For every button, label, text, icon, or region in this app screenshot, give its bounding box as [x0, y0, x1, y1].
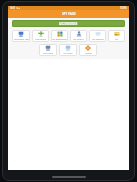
- button[interactable]: My Subscription: [108, 30, 125, 42]
- staticText: 100%: [120, 6, 127, 10]
- staticText: ACCESSORIES: [59, 22, 78, 26]
- staticText: My Profile: [43, 52, 53, 55]
- button[interactable]: Logout: [79, 44, 97, 56]
- staticText: 9:41 ▾ ▴: [10, 6, 20, 10]
- button[interactable]: ACCESSORIES: [12, 20, 125, 27]
- staticText: Add Device: [35, 38, 46, 41]
- button[interactable]: Document Mgr: [12, 30, 30, 42]
- button[interactable]: My Downloads: [51, 30, 68, 42]
- staticText: My Alerts: [63, 52, 73, 55]
- button[interactable]: Add Device: [32, 30, 49, 42]
- button[interactable]: My Profile: [39, 44, 57, 56]
- staticText: Document Mgr: [14, 38, 29, 41]
- staticText: Logout: [85, 52, 92, 55]
- staticText: My Orders: [73, 38, 84, 41]
- staticText: My Subscription: [109, 38, 124, 41]
- staticText: My Services: [92, 38, 104, 41]
- button[interactable]: My Orders: [70, 30, 87, 42]
- staticText: My Downloads: [52, 38, 67, 41]
- button[interactable]: My Alerts: [59, 44, 77, 56]
- button[interactable]: My Services: [89, 30, 106, 42]
- staticText: MY PAGE: [62, 12, 76, 16]
